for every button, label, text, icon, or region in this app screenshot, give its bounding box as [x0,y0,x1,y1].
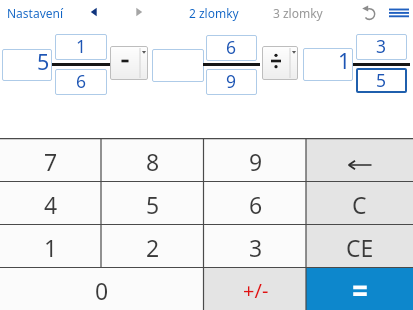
staticText: 1 [44,232,58,263]
staticText: CE [346,232,374,263]
button[interactable]: 1 [0,224,101,267]
button[interactable] [110,46,148,80]
staticText: 0 [95,275,109,306]
staticText: C [352,189,367,220]
button[interactable] [262,46,298,80]
staticText: 9 [249,146,263,177]
button[interactable]: Nastavení [5,3,66,23]
staticText: 1 [338,46,351,75]
button[interactable]: 0 [0,267,204,310]
button[interactable] [86,4,102,20]
staticText: 6 [76,69,87,93]
button[interactable]: 2 [101,224,204,267]
button[interactable] [306,138,413,181]
button[interactable]: 6 [55,69,107,95]
staticText: 2 [146,232,160,263]
staticText: 2 zlomky [189,5,239,21]
button[interactable] [359,3,379,23]
staticText: 6 [249,189,263,220]
staticText: 8 [146,146,160,177]
staticText: 7 [44,146,58,177]
staticText: 1 [76,34,87,58]
button[interactable]: 7 [0,138,101,181]
staticText: 3 zlomky [273,5,323,21]
button[interactable]: CE [306,224,413,267]
button[interactable]: 8 [101,138,204,181]
button[interactable]: 9 [204,138,307,181]
button[interactable]: 5 [2,49,52,81]
button[interactable] [306,267,413,310]
staticText: 5 [376,68,387,92]
staticText: 3 [376,34,387,58]
staticText: 4 [44,189,58,220]
staticText: 5 [37,47,50,76]
button[interactable]: 6 [204,181,307,224]
staticText: 5 [146,189,160,220]
button[interactable] [131,4,147,20]
button[interactable]: 1 [303,48,353,81]
button[interactable]: 4 [0,181,101,224]
staticText: Nastavení [7,5,64,21]
button[interactable]: 3 zlomky [271,3,325,23]
button[interactable] [386,5,411,21]
button[interactable]: C [306,181,413,224]
staticText: 9 [226,69,237,93]
button[interactable]: 5 [356,68,407,93]
staticText: +/- [243,277,269,304]
button[interactable]: 2 zlomky [187,3,241,23]
button[interactable]: 1 [55,34,107,60]
button[interactable]: 3 [204,224,307,267]
button[interactable]: 3 [356,34,407,60]
button[interactable]: +/- [204,267,307,310]
staticText: 3 [249,232,263,263]
button[interactable]: 6 [206,35,257,61]
button[interactable]: 5 [101,181,204,224]
staticText: 6 [226,35,237,59]
button[interactable]: 9 [206,69,257,95]
button[interactable] [152,49,204,82]
